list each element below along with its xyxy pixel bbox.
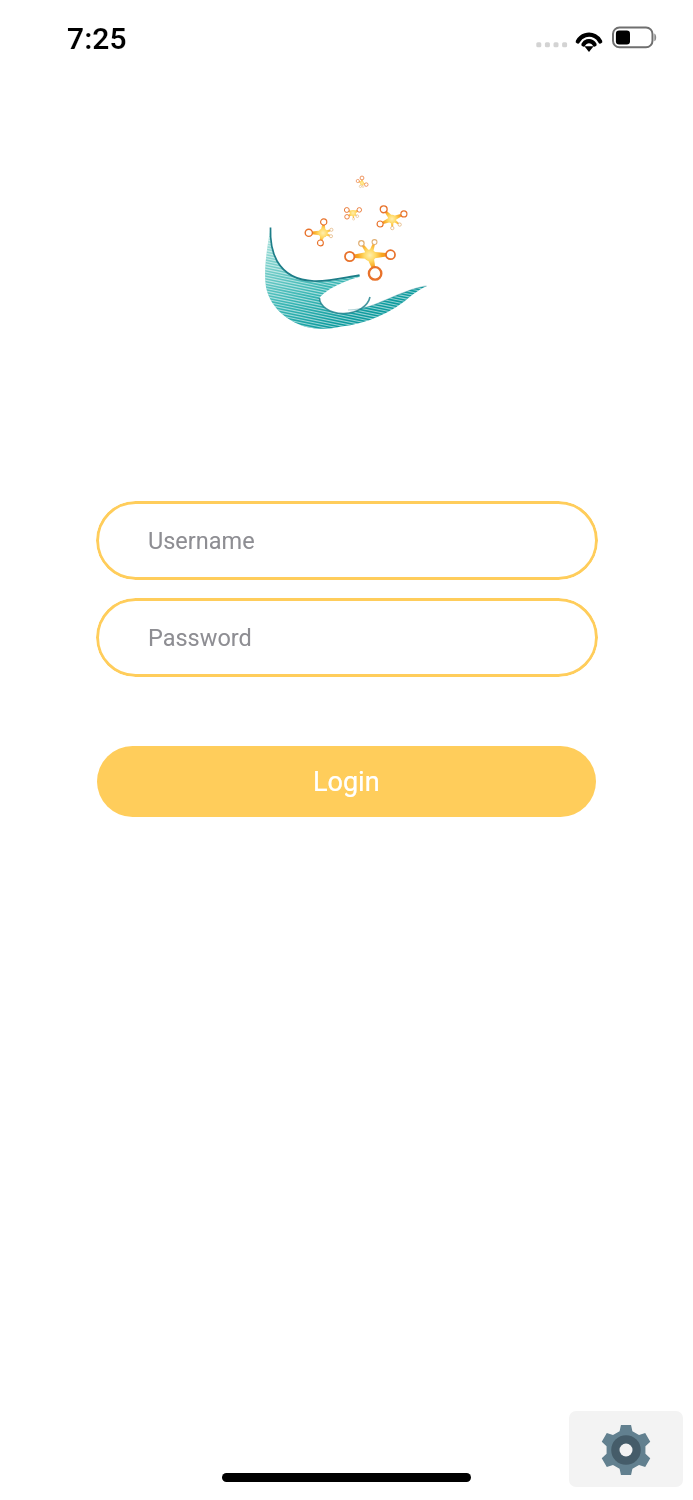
staticText: 7:25 xyxy=(67,21,127,56)
button[interactable]: Login xyxy=(97,746,596,817)
button[interactable]: Username xyxy=(96,501,598,580)
button[interactable]: Settings xyxy=(569,1411,683,1487)
staticText: Username xyxy=(148,527,255,555)
staticText: Password xyxy=(148,624,252,652)
button[interactable]: Password xyxy=(96,598,598,677)
staticText: Login xyxy=(313,766,380,798)
